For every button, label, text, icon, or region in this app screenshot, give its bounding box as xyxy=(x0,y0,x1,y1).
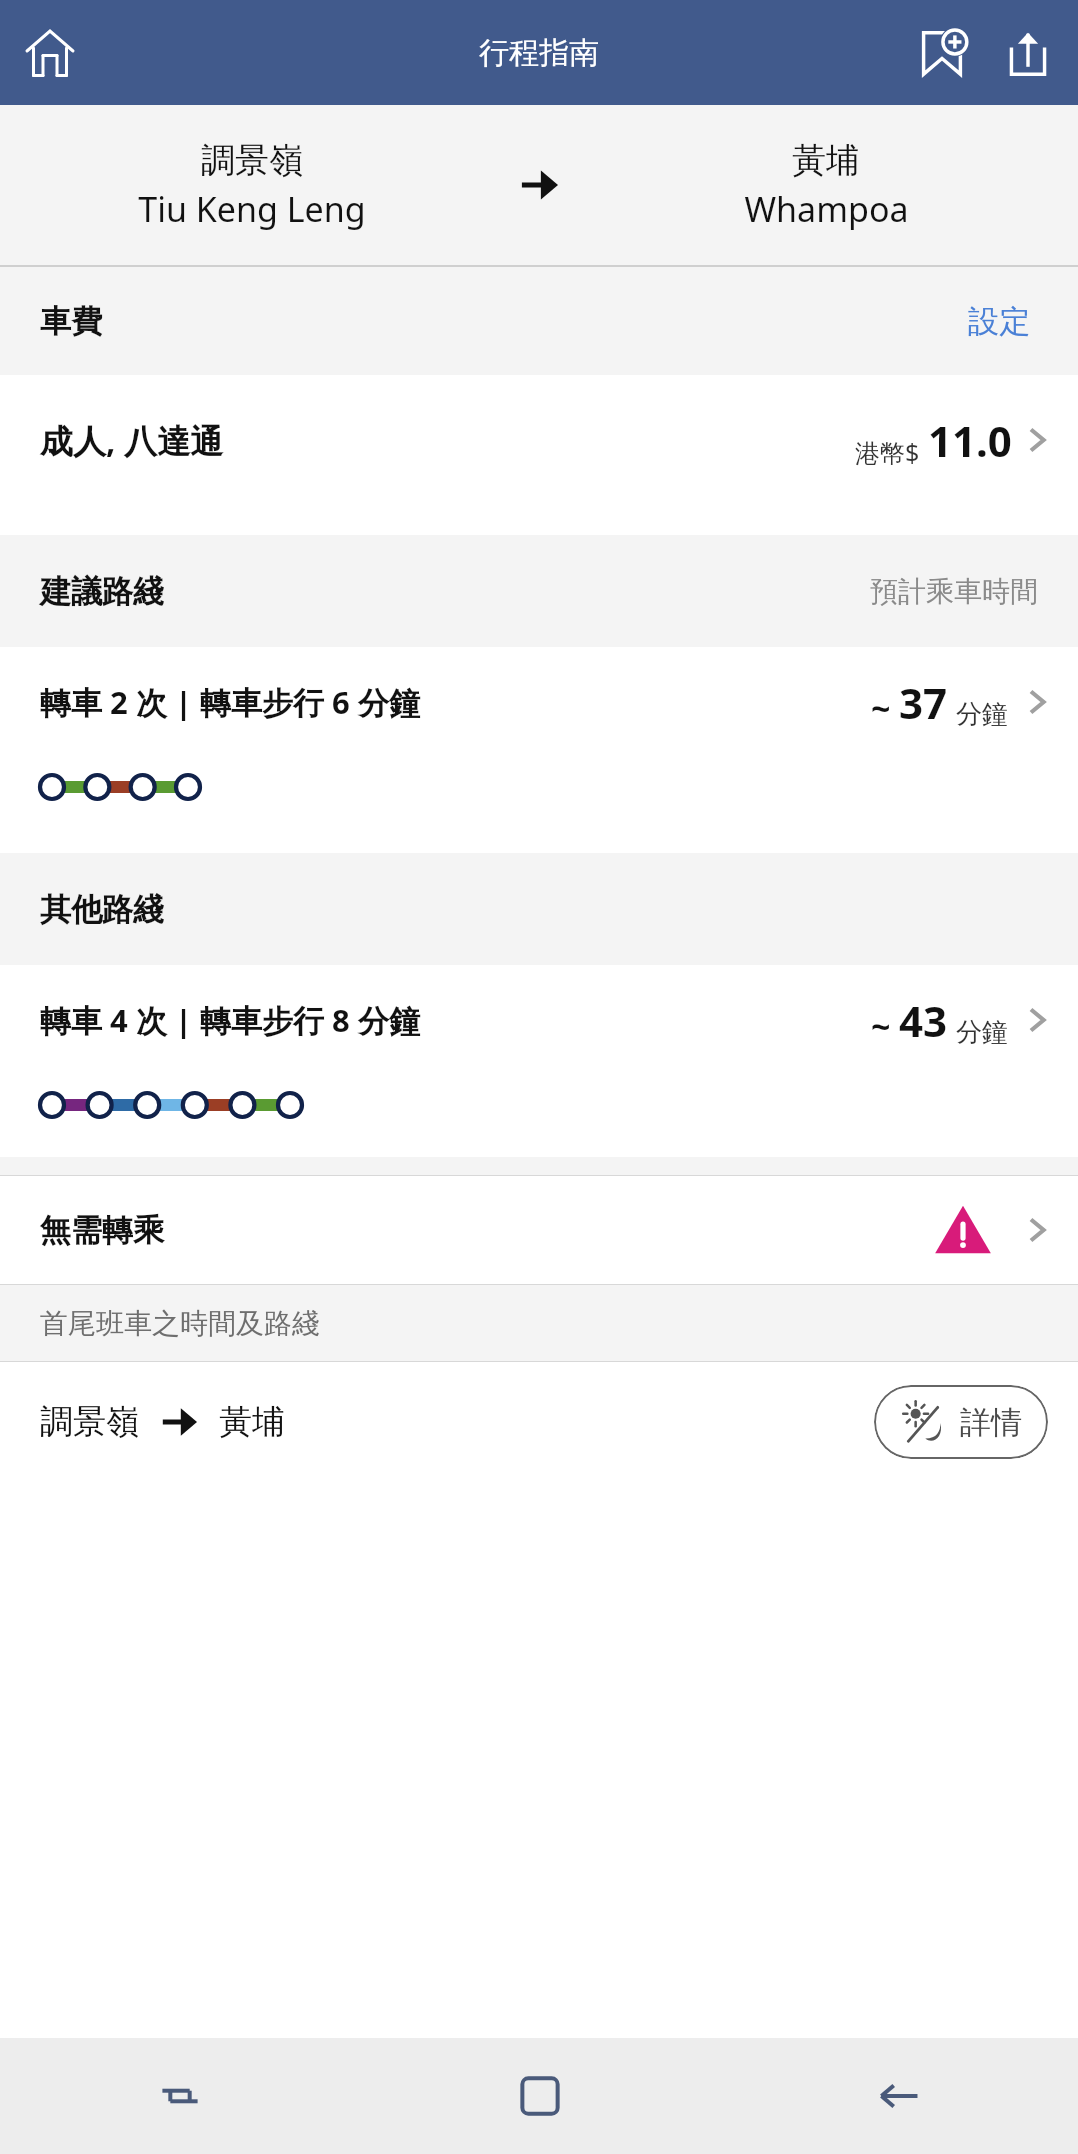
button[interactable]: 成人, 八達通 xyxy=(0,375,1078,505)
button[interactable]: 無需轉乘 xyxy=(0,1176,1078,1284)
staticText: 首尾班車之時間及路綫 xyxy=(40,1306,320,1341)
staticText: 設定 xyxy=(968,302,1030,341)
staticText: 37 xyxy=(899,674,948,731)
staticText: 無需轉乘 xyxy=(40,1211,164,1250)
staticText: 黃埔 xyxy=(219,1401,285,1443)
staticText: 43 xyxy=(899,992,948,1049)
button[interactable]: 詳情 xyxy=(874,1385,1048,1459)
staticText: 預計乘車時間 xyxy=(870,574,1038,609)
staticText: 調景嶺 xyxy=(40,1401,139,1443)
button[interactable]: 轉車 4 次 | 轉車步行 8 分鐘 xyxy=(0,965,1078,1075)
button[interactable]: Home xyxy=(360,2038,719,2154)
staticText: 其他路綫 xyxy=(40,890,164,929)
staticText: 轉車 4 次 | 轉車步行 8 分鐘 xyxy=(40,999,420,1041)
staticText: 黃埔 xyxy=(792,139,860,182)
button[interactable]: Back xyxy=(719,2038,1078,2154)
button[interactable]: Home xyxy=(14,17,86,89)
button[interactable]: Recents xyxy=(0,2038,360,2154)
button[interactable]: Share xyxy=(992,17,1064,89)
staticText: Tiu Keng Leng xyxy=(138,186,366,232)
staticText: 車費 xyxy=(40,302,102,341)
staticText: 建議路綫 xyxy=(40,572,164,611)
staticText: 港幣$ xyxy=(855,435,920,469)
staticText: 調景嶺 xyxy=(201,139,303,182)
staticText: ~ xyxy=(871,1003,891,1049)
button[interactable]: 轉車 2 次 | 轉車步行 6 分鐘 xyxy=(0,647,1078,757)
staticText: Whampoa xyxy=(744,186,909,232)
staticText: 成人, 八達通 xyxy=(40,418,223,463)
staticText: 11.0 xyxy=(928,412,1012,469)
staticText: ~ xyxy=(871,685,891,731)
staticText: 分鐘 xyxy=(956,698,1008,731)
staticText: 轉車 2 次 | 轉車步行 6 分鐘 xyxy=(40,681,420,723)
button[interactable]: 設定 xyxy=(960,294,1038,349)
button[interactable]: Bookmark xyxy=(906,17,978,89)
staticText: 行程指南 xyxy=(479,34,599,72)
staticText: 分鐘 xyxy=(956,1016,1008,1049)
staticText: 詳情 xyxy=(960,1403,1022,1442)
